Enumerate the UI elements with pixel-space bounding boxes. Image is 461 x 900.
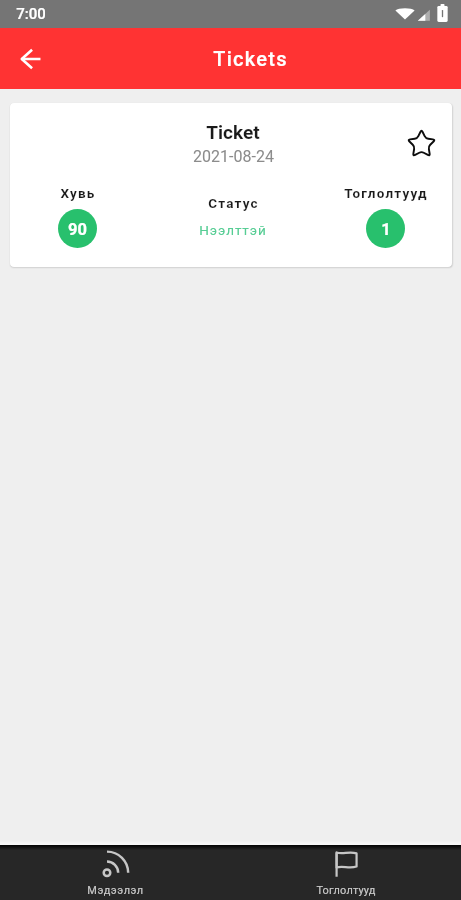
staticText: Хувь xyxy=(60,185,96,201)
button[interactable]: Мэдээлэл xyxy=(0,845,230,900)
button[interactable]: Тоглолтууд xyxy=(230,845,461,900)
staticText: Нээлттэй xyxy=(199,222,267,238)
staticText: 1 xyxy=(381,220,391,239)
staticText: Тоглолтууд xyxy=(316,884,376,897)
staticText: 90 xyxy=(68,220,87,239)
staticText: Тоглолтууд xyxy=(344,185,428,201)
button[interactable]: Back xyxy=(7,35,55,83)
staticText: 7:00 xyxy=(16,5,46,23)
button[interactable]: Ticket xyxy=(10,103,452,267)
staticText: Tickets xyxy=(213,47,288,70)
staticText: Мэдээлэл xyxy=(87,884,144,897)
button[interactable]: Add to favourites xyxy=(399,121,443,165)
staticText: Статус xyxy=(208,195,259,211)
staticText: Ticket xyxy=(206,121,260,143)
staticText: 2021-08-24 xyxy=(193,147,274,166)
